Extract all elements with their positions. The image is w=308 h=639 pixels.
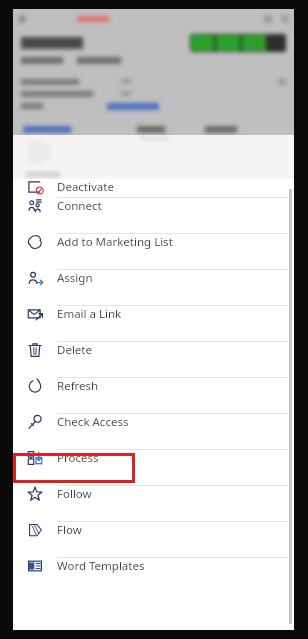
button[interactable]: Add to Marketing List — [13, 234, 294, 270]
button[interactable]: Process — [13, 450, 294, 486]
button[interactable]: Delete — [13, 342, 294, 378]
button[interactable]: Check Access — [13, 414, 294, 450]
staticText: Word Templates — [57, 558, 145, 574]
staticText: Flow — [57, 522, 82, 538]
button[interactable]: Refresh — [13, 378, 294, 414]
staticText: Add to Marketing List — [57, 234, 173, 250]
staticText: Deactivate — [57, 179, 114, 195]
button[interactable]: Connect — [13, 198, 294, 234]
staticText: Assign — [57, 270, 93, 286]
button[interactable]: Word Templates — [13, 558, 294, 594]
staticText: Refresh — [57, 378, 99, 394]
staticText: Email a Link — [57, 306, 122, 322]
button[interactable]: Email a Link — [13, 306, 294, 342]
staticText: Check Access — [57, 414, 129, 430]
button[interactable]: Flow — [13, 522, 294, 558]
staticText: Delete — [57, 342, 92, 358]
staticText: Process — [57, 450, 99, 466]
button[interactable]: Assign — [13, 270, 294, 306]
button[interactable]: Deactivate — [13, 179, 294, 198]
staticText: Connect — [57, 198, 102, 214]
staticText: Follow — [57, 486, 92, 502]
button[interactable]: Follow — [13, 486, 294, 522]
